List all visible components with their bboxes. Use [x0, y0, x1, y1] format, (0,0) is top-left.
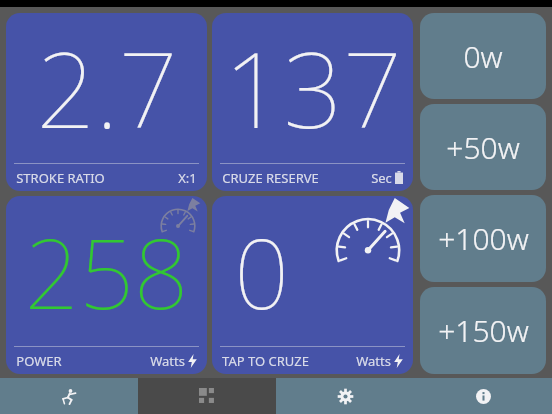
button[interactable]: Dashboard: [138, 378, 276, 414]
staticText: +100w: [438, 218, 529, 259]
staticText: Watts: [356, 352, 391, 370]
staticText: 258: [24, 206, 189, 337]
button[interactable]: Info: [414, 378, 552, 414]
button[interactable]: +50w: [420, 104, 546, 190]
button[interactable]: +100w: [420, 195, 546, 282]
staticText: 0w: [463, 36, 503, 77]
button[interactable]: 2.7: [6, 13, 207, 191]
staticText: Sec: [371, 169, 392, 187]
staticText: +150w: [438, 310, 529, 351]
staticText: X:1: [178, 169, 197, 187]
button[interactable]: Workout: [0, 378, 138, 414]
button[interactable]: Settings: [276, 378, 414, 414]
staticText: POWER: [16, 352, 62, 370]
staticText: 2.7: [36, 17, 178, 159]
button[interactable]: +150w: [420, 287, 546, 374]
button[interactable]: 0: [212, 196, 413, 374]
button[interactable]: 137: [212, 13, 413, 191]
staticText: +50w: [446, 127, 520, 168]
button[interactable]: 258: [6, 196, 207, 374]
button[interactable]: 0w: [420, 13, 546, 99]
staticText: TAP TO CRUZE: [222, 352, 309, 370]
staticText: Watts: [150, 352, 185, 370]
staticText: STROKE RATIO: [16, 169, 105, 187]
staticText: 0: [234, 206, 289, 337]
staticText: 137: [224, 17, 402, 159]
staticText: CRUZE RESERVE: [222, 169, 319, 187]
